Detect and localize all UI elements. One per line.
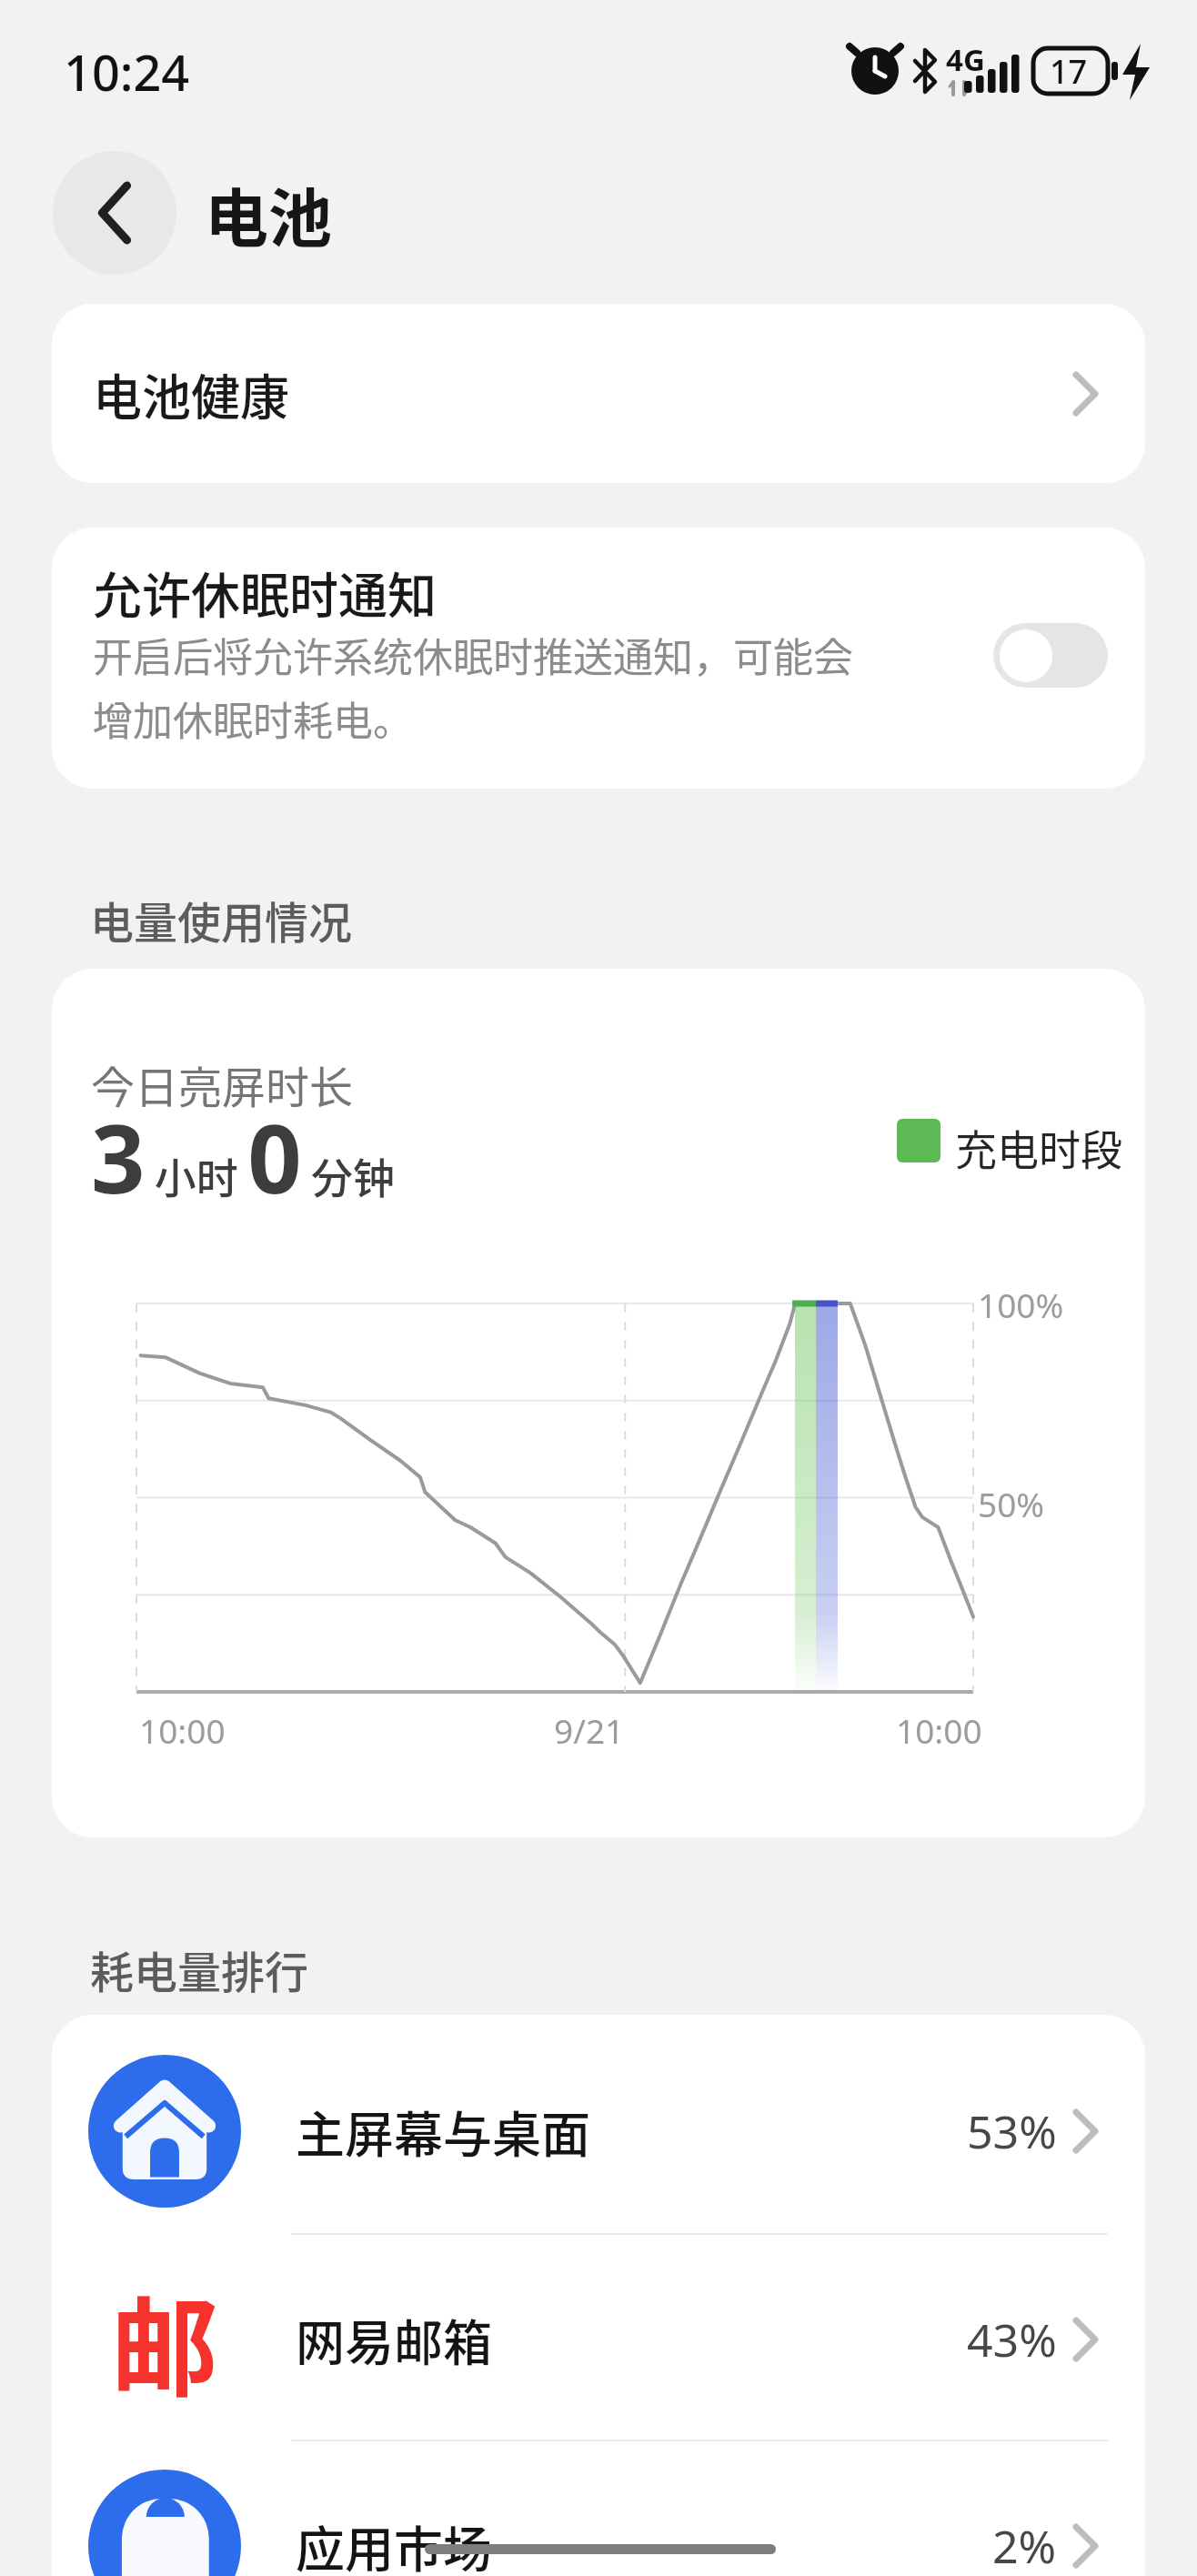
button[interactable]: 邮	[52, 2230, 1145, 2449]
staticText: 网易邮箱	[296, 2304, 492, 2375]
staticText: 10:00	[896, 1707, 982, 1753]
staticText: 43%	[967, 2309, 1057, 2370]
staticText: 3 小时 0 分钟	[91, 1092, 396, 1222]
staticText: 2%	[992, 2515, 1057, 2576]
staticText: 53%	[967, 2100, 1057, 2162]
staticText: 10:00	[139, 1707, 226, 1753]
button[interactable]: 主屏幕与桌面	[52, 2022, 1145, 2240]
staticText: 主屏幕与桌面	[296, 2096, 590, 2167]
staticText: 50%	[978, 1481, 1045, 1526]
button[interactable]	[993, 623, 1108, 688]
button[interactable]: 应用市场	[52, 2437, 1145, 2576]
staticText: 耗电量排行	[90, 1937, 309, 2001]
staticText: 充电时段	[955, 1117, 1122, 1178]
staticText: 9/21	[554, 1707, 625, 1753]
staticText: 应用市场	[296, 2511, 492, 2576]
staticText: 100%	[978, 1282, 1064, 1327]
staticText: 电量使用情况	[90, 888, 353, 951]
button[interactable]: 电池健康	[52, 304, 1145, 483]
staticText: 开启后将允许系统休眠时推送通知，可能会 增加休眠时耗电。	[93, 626, 853, 748]
staticText: 17	[1050, 49, 1088, 94]
button[interactable]	[53, 151, 176, 275]
staticText: 10:24	[64, 38, 190, 106]
staticText: 电池	[205, 168, 332, 260]
staticText: 今日亮屏时长	[91, 1052, 354, 1116]
staticText: 邮	[111, 2263, 219, 2416]
staticText: 4G	[946, 39, 985, 80]
staticText: 允许休眠时通知	[93, 557, 437, 628]
staticText: 电池健康	[93, 358, 289, 429]
